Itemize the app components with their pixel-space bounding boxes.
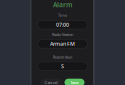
staticText: Repeat days xyxy=(52,54,72,59)
button[interactable]: S xyxy=(37,62,87,71)
staticText: Alarm xyxy=(53,0,72,9)
button[interactable]: Cancel xyxy=(40,79,61,85)
staticText: Arman FM xyxy=(50,40,75,47)
staticText: Radio Station xyxy=(52,32,73,37)
staticText: Cancel xyxy=(44,80,57,85)
staticText: S xyxy=(61,63,64,70)
button[interactable]: Save xyxy=(64,79,84,85)
staticText: 07:00 xyxy=(56,21,69,28)
staticText: Save xyxy=(70,80,78,85)
staticText: Time xyxy=(58,13,67,18)
button[interactable]: Arman FM xyxy=(37,39,87,48)
button[interactable]: 07:00 xyxy=(37,20,87,29)
